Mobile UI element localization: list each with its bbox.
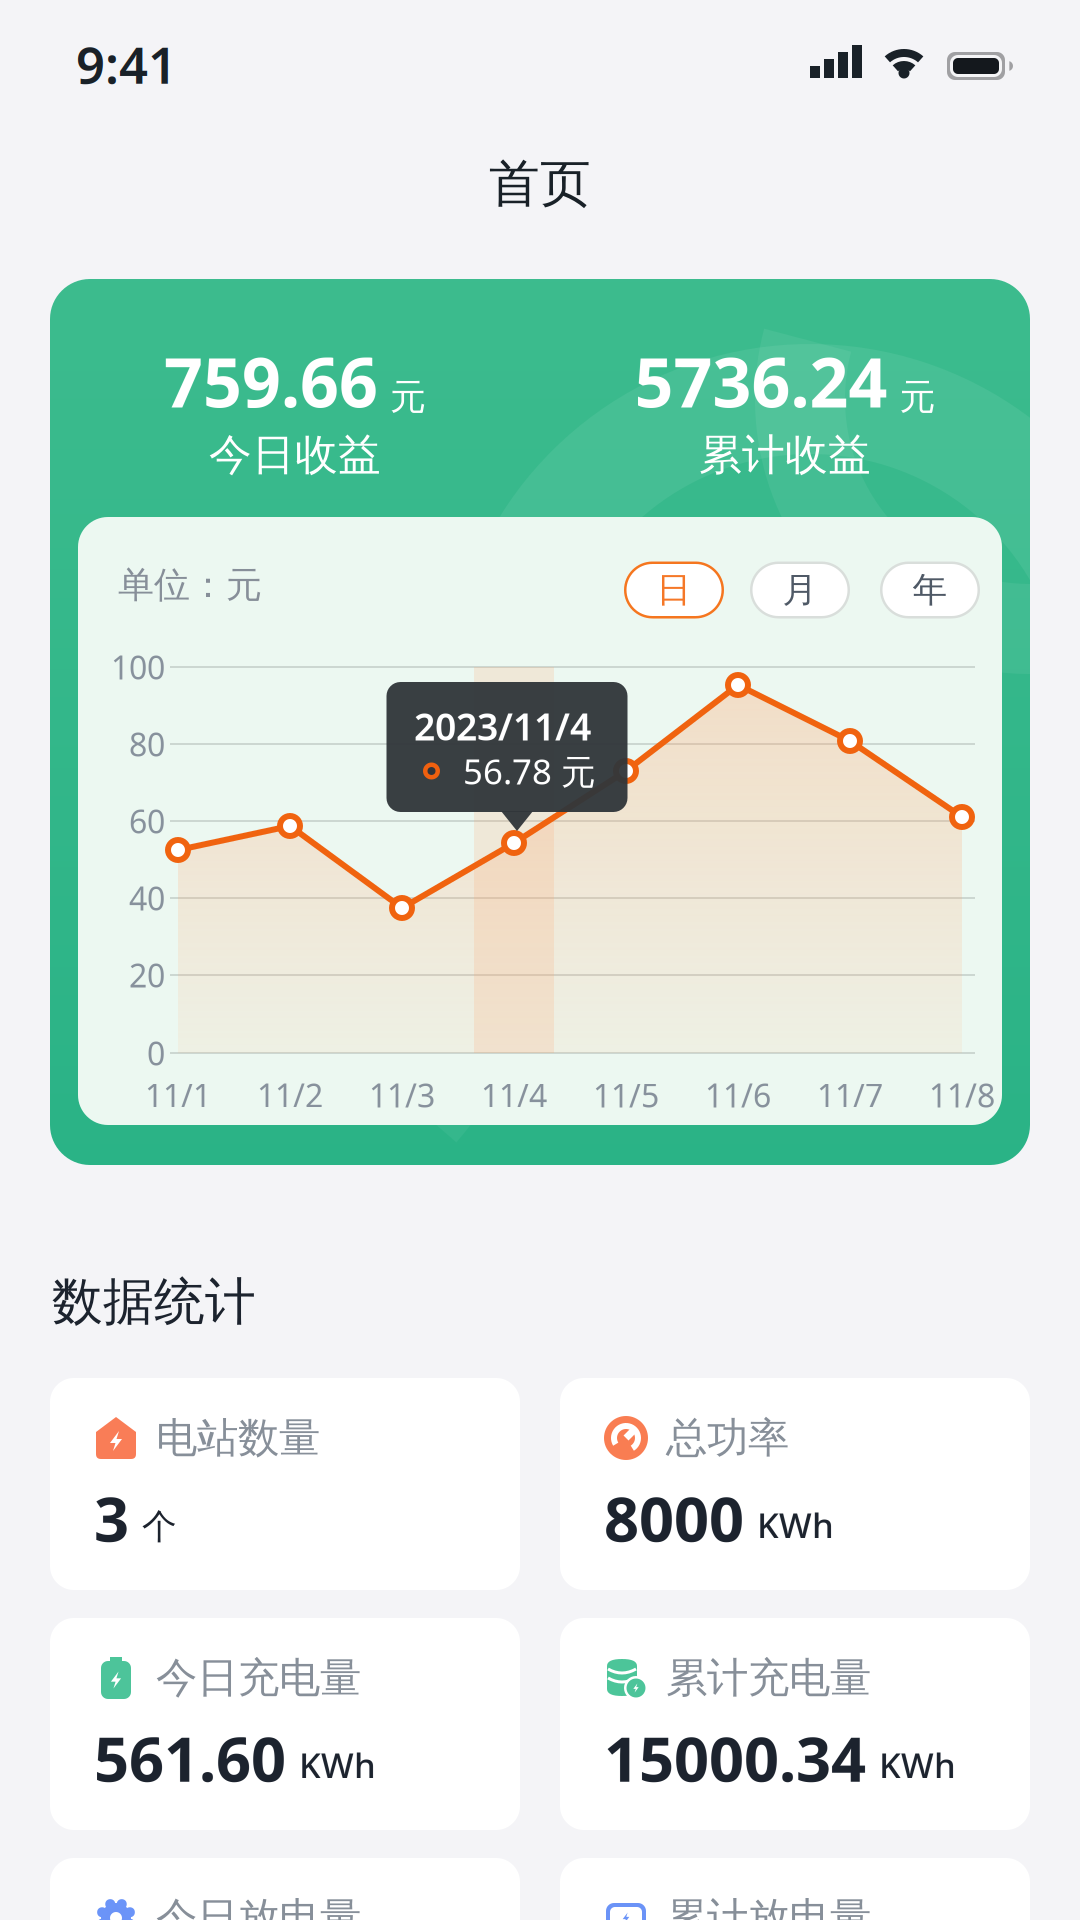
staticText: 11/3 — [369, 1074, 435, 1116]
staticText: 个 — [142, 1505, 177, 1548]
staticText: KWh — [299, 1742, 376, 1788]
staticText: 11/7 — [817, 1074, 883, 1116]
staticText: 0 — [147, 1032, 165, 1074]
staticText: 100 — [111, 646, 165, 688]
staticText: 2023/11/4 — [414, 701, 591, 751]
staticText: 11/1 — [145, 1074, 211, 1116]
staticText: 累计收益 — [699, 429, 871, 481]
staticText: 今日放电量 — [156, 1893, 361, 1920]
button[interactable]: 日 — [624, 561, 724, 618]
staticText: 11/4 — [481, 1074, 547, 1116]
staticText: 8000 — [604, 1477, 744, 1559]
staticText: 759.66 — [164, 336, 378, 426]
staticText: 80 — [129, 723, 165, 765]
staticText: 数据统计 — [52, 1271, 256, 1333]
staticText: 561.60 — [94, 1717, 286, 1799]
button[interactable]: 电站数量 — [50, 1378, 520, 1590]
staticText: 累计充电量 — [666, 1653, 871, 1703]
staticText: 60 — [129, 800, 165, 842]
staticText: 56.78 元 — [463, 748, 596, 794]
staticText: 11/2 — [257, 1074, 323, 1116]
button[interactable]: 年 — [880, 561, 980, 618]
button[interactable]: 累计放电量 — [560, 1858, 1030, 1920]
staticText: 年 — [912, 569, 947, 611]
button[interactable]: 累计充电量 — [560, 1618, 1030, 1830]
staticText: 电站数量 — [156, 1413, 320, 1463]
staticText: 元 — [899, 375, 935, 419]
staticText: 单位：元 — [118, 563, 262, 607]
button[interactable]: 今日放电量 — [50, 1858, 520, 1920]
staticText: 5736.24 — [634, 336, 887, 426]
staticText: 11/5 — [593, 1074, 659, 1116]
staticText: 首页 — [489, 153, 591, 215]
button[interactable]: 今日充电量 — [50, 1618, 520, 1830]
staticText: 元 — [390, 375, 426, 419]
staticText: 日 — [656, 569, 691, 611]
staticText: 15000.34 — [604, 1717, 866, 1799]
staticText: 40 — [129, 877, 165, 919]
staticText: 月 — [782, 569, 817, 611]
staticText: 今日收益 — [209, 429, 381, 481]
staticText: 11/8 — [929, 1074, 995, 1116]
staticText: KWh — [757, 1502, 834, 1548]
staticText: 20 — [129, 954, 165, 996]
staticText: 总功率 — [666, 1413, 789, 1463]
staticText: 今日充电量 — [156, 1653, 361, 1703]
staticText: 累计放电量 — [666, 1893, 871, 1920]
staticText: 3 — [94, 1477, 129, 1559]
button[interactable]: 总功率 — [560, 1378, 1030, 1590]
staticText: 11/6 — [705, 1074, 771, 1116]
staticText: 9:41 — [76, 30, 177, 98]
staticText: KWh — [879, 1742, 956, 1788]
button[interactable]: 月 — [750, 561, 850, 618]
